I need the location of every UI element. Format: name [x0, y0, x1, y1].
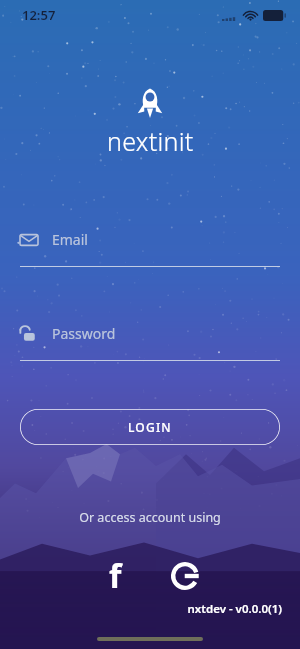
staticText: nextinit: [107, 124, 194, 158]
button[interactable]: LOGIN: [20, 409, 280, 445]
staticText: LOGIN: [128, 419, 172, 435]
staticText: nxtdev - v0.0.0(1): [0, 601, 282, 617]
staticText: Or access account using: [0, 509, 300, 526]
staticText: Email: [52, 230, 88, 249]
button[interactable]: Sign in with Facebook: [93, 554, 137, 598]
staticText: Password: [52, 324, 116, 343]
button[interactable]: Password: [20, 324, 280, 361]
staticText: 12:57: [22, 6, 56, 24]
staticText: f: [109, 554, 122, 598]
button[interactable]: Sign in with Google: [163, 554, 207, 598]
button[interactable]: Email: [20, 230, 280, 267]
